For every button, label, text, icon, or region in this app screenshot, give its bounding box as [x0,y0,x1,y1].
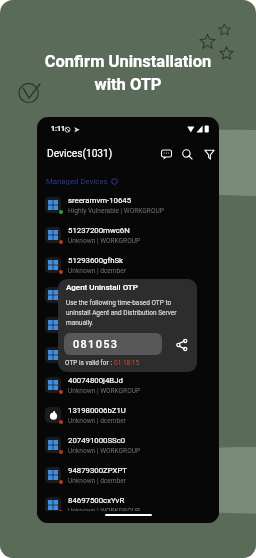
staticText: 22901700pRtZx [68,316,124,325]
button[interactable]: 40074800j4BJd [37,370,219,400]
button[interactable]: Messages [158,146,174,162]
button[interactable]: 84697500cxYvR [37,490,219,520]
button[interactable]: 30845100kLmQw [37,280,219,310]
button[interactable]: sreeramvm-10645 [37,190,219,220]
staticText: Devices(1031) [47,148,113,160]
staticText: Unknown | WORKGROUP [68,507,141,515]
staticText: Unknown | WORKGROUP [68,447,141,455]
staticText: Unknown | WORKGROUP [68,387,141,395]
staticText: Highly Vulnerable | WORKGROUP [68,207,164,215]
staticText: Agent Uninstall OTP [66,283,138,292]
staticText: 51293600gfhSk [68,256,124,265]
button[interactable]: 131980006bZ1U [37,400,219,430]
button[interactable]: 17562300vNbQe [37,340,219,370]
staticText: 17562300vNbQe [68,346,127,355]
staticText: Unknown | dcember [68,327,127,335]
staticText: OTP is valid for : [65,359,114,367]
button[interactable]: Share [174,337,190,353]
staticText: 94879300ZPXPT [68,466,127,475]
staticText: 1:11 [51,125,66,133]
staticText: Unknown | WORKGROUP [68,357,141,365]
button[interactable]: Search [179,146,195,162]
staticText: 30845100kLmQw [68,286,130,295]
staticText: sreeramvm-10645 [68,196,132,205]
staticText: Unknown | WORKGROUP [68,297,141,305]
staticText: 51237200mwc6N [68,226,130,235]
button[interactable]: 51293600gfhSk [37,250,219,280]
staticText: Managed Devices [46,177,108,186]
staticText: Unknown | dcember [68,267,127,275]
staticText: 40074800j4BJd [68,376,123,385]
staticText: 84697500cxYvR [68,496,125,505]
button[interactable]: 51237200mwc6N [37,220,219,250]
staticText: 081053 [73,338,119,351]
button[interactable]: 207491000SSc0 [37,430,219,460]
staticText: Use the following time-based OTP to unin… [66,299,187,326]
button[interactable]: Filter [201,146,217,162]
button[interactable]: 22901700pRtZx [37,310,219,340]
staticText: Unknown | dcember [68,417,127,425]
button[interactable]: 94879300ZPXPT [37,460,219,490]
staticText: Unknown | WORKGROUP [68,237,141,245]
staticText: 207491000SSc0 [68,436,126,445]
staticText: Unknown | dcember [68,477,127,485]
staticText: 131980006bZ1U [68,406,126,415]
staticText: Confirm Uninstallation with OTP [0,52,256,94]
staticText: 01:18:15 [114,359,140,367]
